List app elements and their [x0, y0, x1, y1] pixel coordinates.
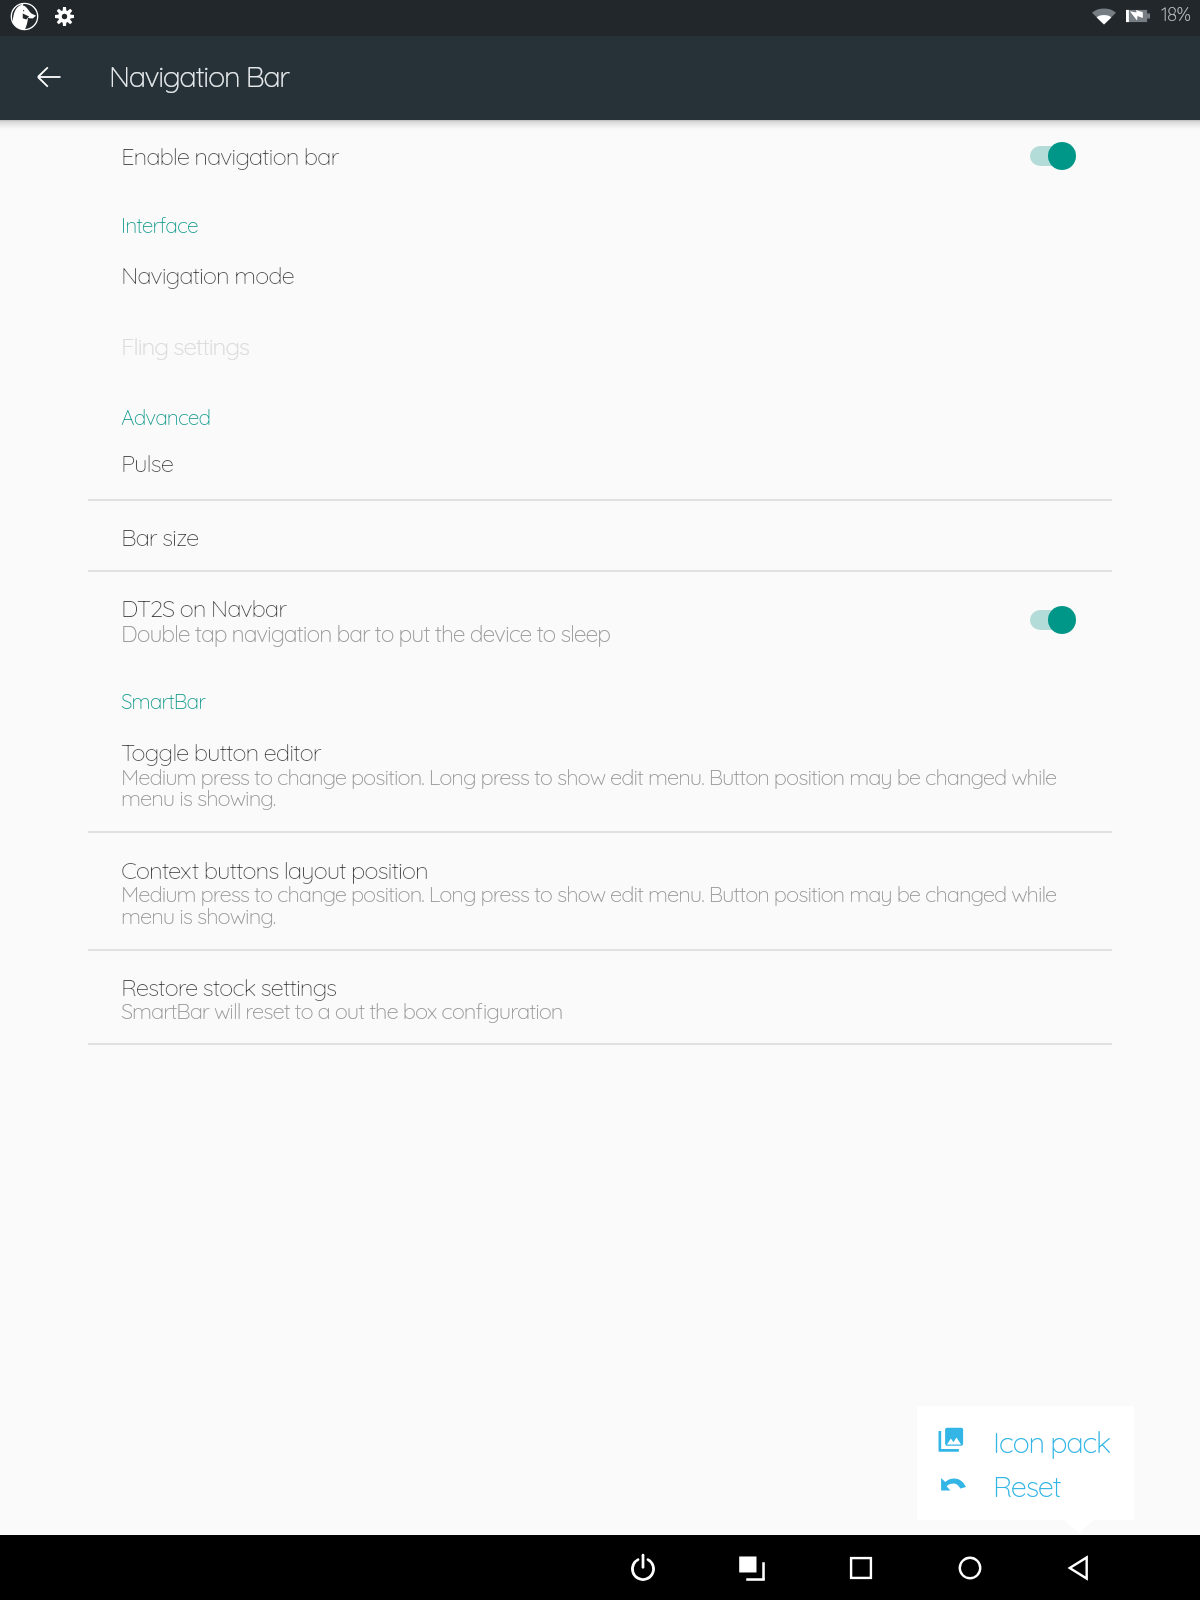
staticText: Bar size — [121, 522, 199, 552]
button[interactable]: Recent apps — [697, 1535, 806, 1600]
staticText: Medium press to change position. Long pr… — [121, 880, 1057, 929]
button[interactable]: Back — [1024, 1535, 1133, 1600]
staticText: Navigation mode — [121, 260, 294, 290]
staticText: Navigation Bar — [109, 58, 289, 94]
staticText: SmartBar will reset to a out the box con… — [121, 997, 563, 1025]
staticText: Reset — [993, 1468, 1061, 1504]
staticText: Pulse — [121, 448, 173, 478]
staticText: Context buttons layout position — [121, 855, 428, 885]
staticText: Toggle button editor — [121, 737, 321, 767]
staticText: Restore stock settings — [121, 972, 337, 1002]
button[interactable]: Reset — [917, 1454, 1134, 1506]
button[interactable]: Context buttons layout position — [0, 833, 1200, 950]
staticText: Fling settings — [121, 331, 249, 361]
staticText: Advanced — [121, 404, 211, 430]
staticText: 18% — [1161, 2, 1191, 26]
staticText: DT2S on Navbar — [121, 593, 286, 623]
button[interactable]: DT2S on Navbar — [0, 572, 1200, 668]
button[interactable]: Back — [23, 51, 75, 103]
button[interactable]: Navigation mode — [0, 238, 1200, 306]
button[interactable]: Home — [915, 1535, 1024, 1600]
staticText: Enable navigation bar — [121, 141, 339, 171]
button[interactable]: Restore stock settings — [0, 951, 1200, 1044]
button[interactable]: Power — [588, 1535, 697, 1600]
button[interactable]: Icon pack — [917, 1410, 1134, 1462]
button[interactable]: Enable navigation bar — [0, 122, 1200, 190]
staticText: Interface — [121, 212, 198, 238]
button[interactable]: Bar size — [0, 500, 1200, 568]
staticText: SmartBar — [121, 688, 205, 714]
button[interactable]: Pulse — [0, 426, 1200, 494]
button[interactable]: Overview — [806, 1535, 915, 1600]
staticText: Medium press to change position. Long pr… — [121, 763, 1057, 811]
staticText: Icon pack — [993, 1424, 1110, 1460]
staticText: Double tap navigation bar to put the dev… — [121, 619, 611, 648]
button[interactable]: Toggle button editor — [0, 715, 1200, 832]
